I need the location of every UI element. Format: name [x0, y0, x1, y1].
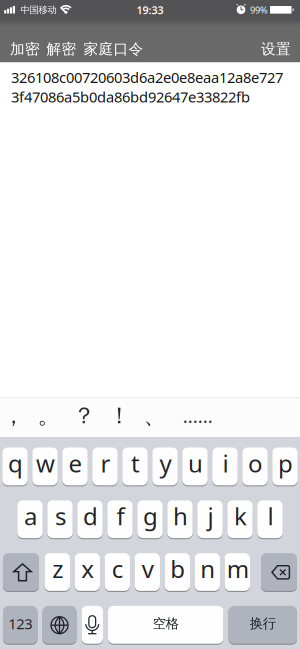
staticText: ...... [183, 403, 213, 428]
staticText: ？ [73, 402, 96, 430]
staticText: v [142, 553, 154, 585]
staticText: 19:33 [136, 3, 163, 17]
staticText: n [200, 553, 215, 585]
button[interactable]: x [74, 553, 100, 591]
staticText: c [112, 553, 124, 585]
staticText: y [159, 447, 171, 479]
button[interactable]: y [152, 447, 178, 485]
button[interactable]: Shift [3, 553, 39, 591]
staticText: 。 [37, 402, 60, 430]
button[interactable]: a [17, 500, 43, 538]
staticText: a [24, 500, 37, 532]
button[interactable]: u [182, 447, 208, 485]
staticText: 123 [8, 614, 32, 633]
button[interactable]: m [224, 553, 250, 591]
staticText: s [55, 500, 66, 532]
button[interactable]: Next keyboard [42, 606, 76, 644]
button[interactable]: j [197, 500, 223, 538]
button[interactable]: o [242, 447, 268, 485]
staticText: k [234, 500, 247, 532]
button[interactable]: 设置 [261, 40, 291, 58]
button[interactable]: ， [2, 404, 25, 432]
button[interactable]: 空格 [108, 606, 223, 644]
staticText: z [52, 553, 63, 585]
button[interactable]: z [44, 553, 70, 591]
staticText: w [36, 447, 55, 479]
button[interactable]: i [212, 447, 238, 485]
staticText: j [207, 500, 213, 532]
button[interactable]: n [194, 553, 220, 591]
button[interactable]: f [107, 500, 133, 538]
staticText: q [8, 447, 23, 479]
staticText: l [267, 500, 273, 532]
staticText: g [143, 500, 158, 532]
staticText: u [188, 447, 203, 479]
button[interactable]: c [104, 553, 130, 591]
staticText: r [100, 447, 110, 479]
button[interactable]: e [62, 447, 88, 485]
staticText: ， [2, 402, 25, 430]
staticText: h [173, 500, 188, 532]
staticText: 换行 [250, 615, 276, 632]
button[interactable]: t [122, 447, 148, 485]
button[interactable]: b [164, 553, 190, 591]
button[interactable]: Dictate [81, 606, 103, 644]
button[interactable]: q [2, 447, 28, 485]
staticText: 99% [250, 4, 268, 16]
staticText: x [81, 553, 94, 585]
staticText: 设置 [261, 40, 291, 58]
staticText: 加密 [10, 40, 40, 58]
button[interactable]: g [137, 500, 163, 538]
staticText: o [248, 447, 263, 479]
button[interactable]: s [47, 500, 73, 538]
button[interactable]: h [167, 500, 193, 538]
button[interactable]: l [257, 500, 283, 538]
button[interactable]: 解密 [40, 40, 76, 58]
staticText: b [170, 553, 185, 585]
staticText: e [68, 447, 82, 479]
button[interactable]: d [77, 500, 103, 538]
button[interactable]: 加密 [10, 40, 40, 58]
staticText: p [278, 447, 293, 479]
button[interactable]: 。 [37, 404, 60, 432]
button[interactable]: 家庭口令 [76, 40, 143, 58]
button[interactable]: 123 [3, 606, 37, 644]
staticText: f [116, 500, 124, 532]
staticText: 3f47086a5b0da86bd92647e33822fb [11, 87, 250, 106]
staticText: 空格 [153, 615, 179, 632]
button[interactable]: w [32, 447, 58, 485]
button[interactable]: p [272, 447, 298, 485]
button[interactable]: ...... [179, 405, 213, 430]
button[interactable]: ？ [73, 404, 96, 432]
button[interactable]: Delete [261, 553, 297, 591]
staticText: i [222, 447, 228, 479]
button[interactable]: k [227, 500, 253, 538]
staticText: 解密 [46, 40, 76, 58]
staticText: m [227, 553, 249, 585]
staticText: 326108c00720603d6a2e0e8eaa12a8e727 [11, 67, 283, 87]
staticText: t [131, 447, 140, 479]
button[interactable]: r [92, 447, 118, 485]
staticText: ！ [108, 402, 131, 430]
button[interactable]: ！ [108, 404, 131, 432]
staticText: 、 [143, 402, 166, 430]
button[interactable]: 换行 [228, 606, 297, 644]
staticText: d [83, 500, 98, 532]
staticText: 中国移动 [20, 4, 56, 16]
button[interactable]: 、 [143, 404, 166, 432]
staticText: 家庭口令 [83, 40, 143, 58]
button[interactable]: v [134, 553, 160, 591]
